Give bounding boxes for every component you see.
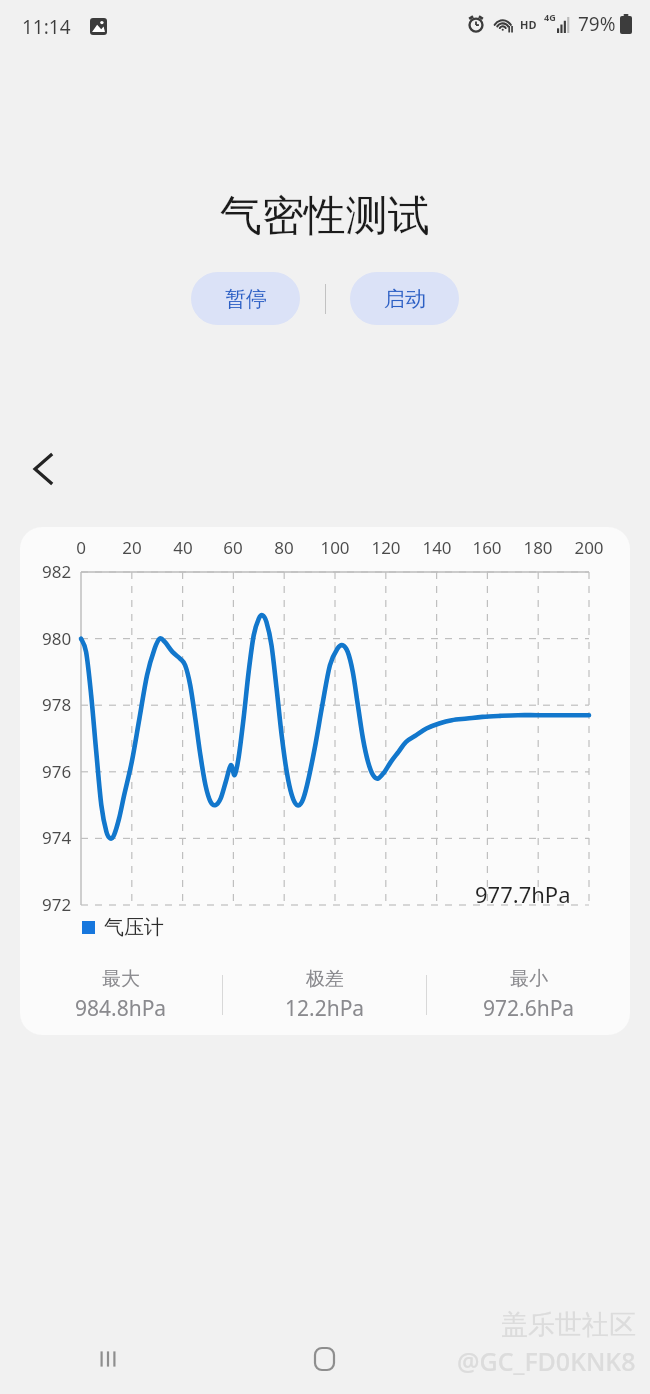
staticText: 140 xyxy=(422,536,452,559)
staticText: 0 xyxy=(76,536,86,559)
button[interactable]: 最小 xyxy=(427,967,630,1023)
staticText: 200 xyxy=(574,536,604,559)
staticText: 气密性测试 xyxy=(220,190,430,243)
staticText: 972.6hPa xyxy=(483,994,575,1023)
button[interactable]: 暂停 xyxy=(191,272,300,325)
staticText: 最小 xyxy=(510,967,548,991)
staticText: 暂停 xyxy=(225,286,267,312)
staticText: 4G xyxy=(544,11,556,23)
staticText: 极差 xyxy=(306,967,344,991)
staticText: 978 xyxy=(42,693,72,716)
staticText: 12.2hPa xyxy=(285,994,365,1023)
staticText: 982 xyxy=(42,560,72,583)
staticText: 20 xyxy=(122,536,142,559)
staticText: @GC_FD0KNK8 xyxy=(457,1344,636,1378)
staticText: 60 xyxy=(223,536,243,559)
staticText: 11:14 xyxy=(22,14,71,40)
button[interactable]: 启动 xyxy=(350,272,459,325)
staticText: 最大 xyxy=(102,967,140,991)
staticText: 984.8hPa xyxy=(75,994,167,1023)
button[interactable]: 极差 xyxy=(223,967,426,1023)
staticText: 160 xyxy=(472,536,502,559)
button[interactable]: 最大 xyxy=(20,967,222,1023)
staticText: 972 xyxy=(42,893,72,916)
staticText: 974 xyxy=(42,826,72,849)
staticText: 120 xyxy=(371,536,401,559)
staticText: 100 xyxy=(320,536,350,559)
button[interactable]: Home xyxy=(216,1324,433,1394)
staticText: 79% xyxy=(578,11,616,37)
staticText: HD xyxy=(520,17,537,32)
staticText: 980 xyxy=(42,627,72,650)
staticText: 40 xyxy=(173,536,193,559)
staticText: 盖乐世社区 xyxy=(501,1308,636,1342)
button[interactable]: Recents xyxy=(0,1324,216,1394)
staticText: 976 xyxy=(42,760,72,783)
staticText: 180 xyxy=(523,536,553,559)
staticText: 启动 xyxy=(384,286,426,312)
staticText: 80 xyxy=(274,536,294,559)
staticText: 气压计 xyxy=(104,915,164,940)
button[interactable]: Back xyxy=(20,446,66,492)
staticText: 977.7hPa xyxy=(475,879,571,909)
